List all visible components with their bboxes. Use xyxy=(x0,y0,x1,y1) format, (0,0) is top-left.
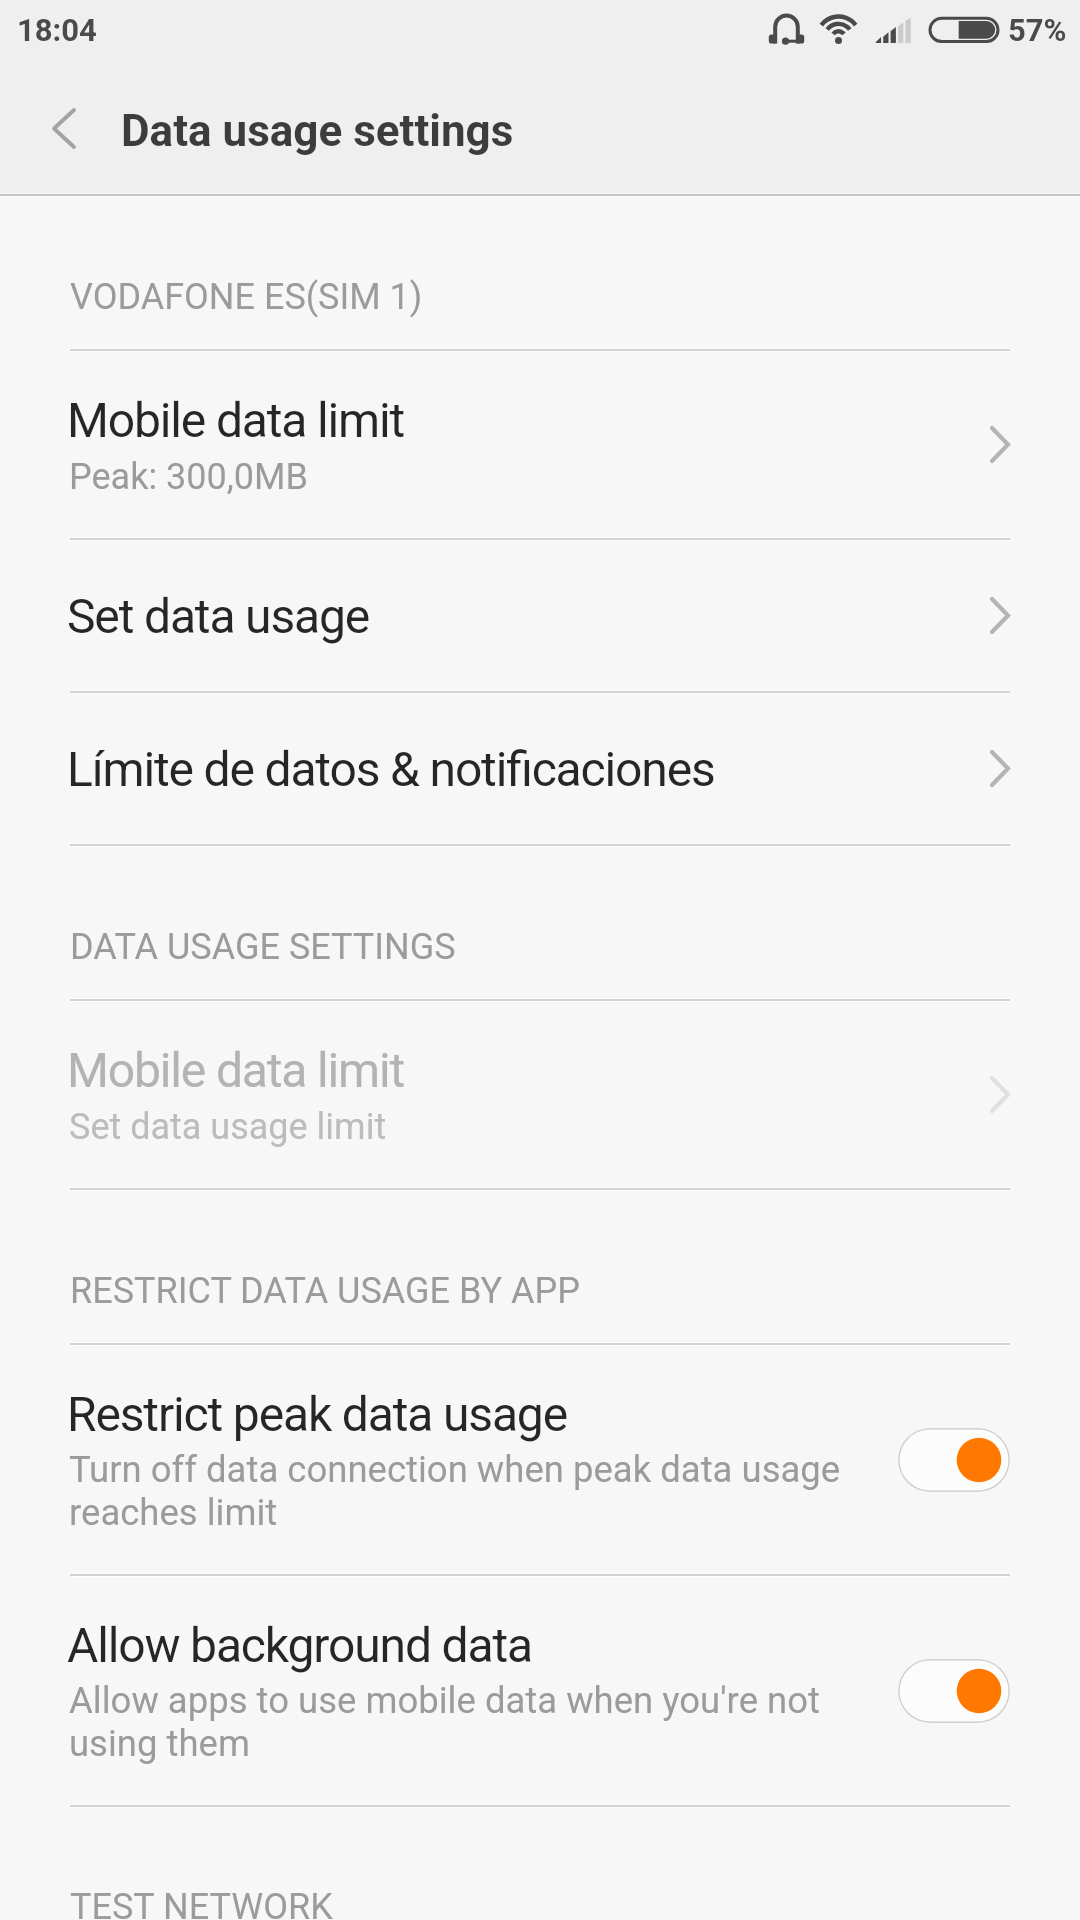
staticText: Mobile data limit xyxy=(67,392,405,448)
button[interactable]: Allow background data xyxy=(0,1576,1080,1805)
staticText: Mobile data limit xyxy=(67,1042,405,1098)
button[interactable]: Set data usage xyxy=(0,540,1080,691)
button[interactable]: Toggle switch xyxy=(898,1428,1010,1492)
staticText: Set data usage xyxy=(67,588,370,644)
staticText: RESTRICT DATA USAGE BY APP xyxy=(70,1270,580,1312)
button[interactable]: Toggle switch xyxy=(898,1659,1010,1723)
staticText: 57% xyxy=(1008,12,1067,48)
staticText: Allow apps to use mobile data when you'r… xyxy=(69,1679,820,1765)
staticText: Restrict peak data usage xyxy=(67,1386,567,1442)
button[interactable]: Límite de datos & notificaciones xyxy=(0,693,1080,844)
staticText: TEST NETWORK xyxy=(70,1886,333,1920)
staticText: Peak: 300,0MB xyxy=(69,456,308,498)
button[interactable]: Mobile data limit xyxy=(0,1001,1080,1188)
staticText: Allow background data xyxy=(67,1617,532,1673)
staticText: Set data usage limit xyxy=(69,1106,387,1148)
staticText: Data usage settings xyxy=(121,105,514,157)
button[interactable]: Mobile data limit xyxy=(0,351,1080,538)
staticText: 18:04 xyxy=(17,12,97,48)
staticText: Turn off data connection when peak data … xyxy=(69,1448,841,1534)
staticText: VODAFONE ES(SIM 1) xyxy=(70,276,423,318)
button[interactable]: Restrict peak data usage xyxy=(0,1345,1080,1574)
staticText: Límite de datos & notificaciones xyxy=(67,741,715,797)
button[interactable]: Back xyxy=(0,68,122,194)
staticText: DATA USAGE SETTINGS xyxy=(70,926,456,968)
